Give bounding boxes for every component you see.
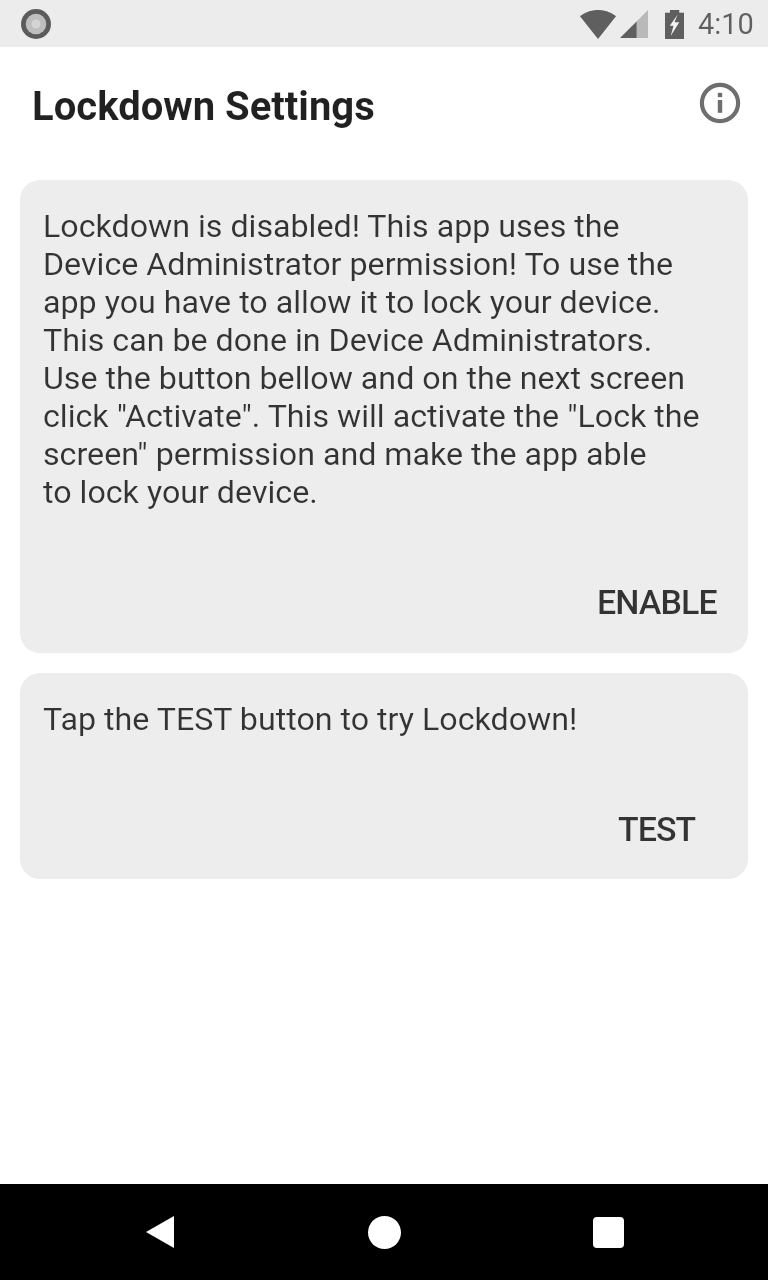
- other: Mobile signal: [620, 10, 648, 38]
- staticText: ENABLE: [597, 582, 717, 622]
- staticText: Lockdown Settings: [32, 83, 375, 130]
- staticText: Lockdown is disabled! This app uses the …: [43, 207, 700, 511]
- button[interactable]: Home: [336, 1184, 432, 1280]
- button[interactable]: Recent apps: [560, 1184, 656, 1280]
- button[interactable]: About this app: [692, 75, 748, 131]
- staticText: Tap the TEST button to try Lockdown!: [43, 700, 578, 738]
- button[interactable]: Back: [112, 1184, 208, 1280]
- other: Notification: [21, 9, 51, 39]
- other: Battery charging: [665, 10, 684, 39]
- button[interactable]: TEST: [602, 797, 712, 861]
- staticText: 4:10: [698, 7, 754, 41]
- other: Wi-Fi: [580, 10, 616, 39]
- staticText: TEST: [618, 809, 696, 849]
- button[interactable]: ENABLE: [581, 570, 733, 634]
